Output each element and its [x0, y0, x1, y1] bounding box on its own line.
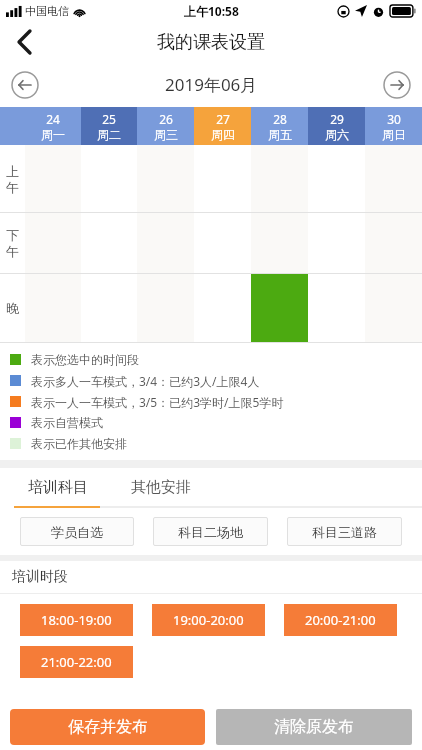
- staticText: 20:00-21:00: [305, 611, 376, 629]
- button[interactable]: 培训科目: [20, 468, 95, 506]
- button[interactable]: 30: [365, 107, 422, 145]
- staticText: 2019年06月: [165, 73, 258, 96]
- button[interactable]: 21:00-22:00: [20, 646, 133, 678]
- staticText: 表示多人一车模式，3/4：已约3人/上限4人: [31, 373, 260, 389]
- button[interactable]: 20:00-21:00: [284, 604, 397, 636]
- staticText: 上午10:58: [184, 3, 239, 19]
- button[interactable]: Next month: [382, 70, 412, 100]
- staticText: 19:00-20:00: [173, 611, 244, 629]
- staticText: 上: [6, 163, 19, 179]
- staticText: 周四: [211, 127, 235, 142]
- button[interactable]: 28: [251, 107, 308, 145]
- staticText: 表示一人一车模式，3/5：已约3学时/上限5学时: [31, 394, 284, 410]
- button[interactable]: Back: [0, 22, 48, 62]
- button[interactable]: 24: [25, 107, 81, 145]
- button[interactable]: 科目二场地: [153, 517, 268, 546]
- button[interactable]: 18:00-19:00: [20, 604, 133, 636]
- button[interactable]: 学员自选: [20, 517, 134, 546]
- button[interactable]: 27: [194, 107, 251, 145]
- staticText: 30: [387, 111, 401, 127]
- staticText: 周日: [382, 127, 406, 142]
- button[interactable]: 科目三道路: [287, 517, 402, 546]
- button[interactable]: 保存并发布: [10, 709, 205, 745]
- staticText: 26: [159, 111, 173, 127]
- staticText: 表示自营模式: [31, 415, 103, 430]
- button[interactable]: Previous month: [10, 70, 40, 100]
- staticText: 表示您选中的时间段: [31, 352, 139, 367]
- staticText: 学员自选: [51, 524, 103, 540]
- staticText: 29: [330, 111, 344, 127]
- staticText: 中国电信: [25, 4, 69, 18]
- staticText: 周五: [268, 127, 292, 142]
- staticText: 27: [216, 111, 230, 127]
- staticText: 18:00-19:00: [41, 611, 112, 629]
- button[interactable]: 其他安排: [123, 468, 198, 506]
- button[interactable]: 26: [137, 107, 194, 145]
- staticText: 培训科目: [28, 478, 88, 497]
- staticText: 清除原发布: [274, 717, 354, 737]
- staticText: 培训时段: [12, 568, 68, 586]
- staticText: 晚: [6, 300, 19, 316]
- staticText: 保存并发布: [68, 717, 148, 737]
- staticText: 24: [46, 111, 60, 127]
- staticText: 周六: [325, 127, 349, 142]
- staticText: 其他安排: [131, 478, 191, 497]
- staticText: 科目三道路: [312, 524, 377, 540]
- staticText: 周三: [154, 127, 178, 142]
- staticText: 表示已作其他安排: [31, 436, 127, 451]
- button[interactable]: 29: [308, 107, 365, 145]
- staticText: 28: [273, 111, 287, 127]
- staticText: 周一: [41, 127, 65, 142]
- staticText: 科目二场地: [178, 524, 243, 540]
- staticText: 午: [6, 179, 19, 195]
- staticText: 21:00-22:00: [41, 653, 112, 671]
- button[interactable]: 19:00-20:00: [152, 604, 265, 636]
- staticText: 我的课表设置: [157, 31, 265, 54]
- staticText: 下: [6, 227, 19, 243]
- button[interactable]: 清除原发布: [216, 709, 412, 745]
- staticText: 周二: [97, 127, 121, 142]
- staticText: 午: [6, 243, 19, 259]
- button[interactable]: 25: [81, 107, 137, 145]
- staticText: 25: [102, 111, 116, 127]
